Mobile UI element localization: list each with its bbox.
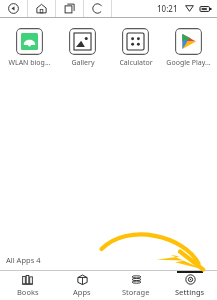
staticText: WLAN biog...: [8, 58, 51, 68]
staticText: Calculator: [119, 58, 153, 68]
staticText: Gallery: [71, 58, 95, 68]
button[interactable]: Books: [0, 271, 55, 300]
button[interactable]: WLAN biog...: [2, 25, 56, 71]
button[interactable]: Refresh: [84, 0, 111, 17]
button[interactable]: Google Play...: [162, 25, 215, 71]
button[interactable]: Apps: [55, 271, 109, 300]
staticText: Google Play...: [166, 58, 211, 68]
button[interactable]: Recents: [56, 0, 83, 17]
button[interactable]: Calculator: [109, 25, 162, 71]
staticText: Books: [17, 287, 39, 297]
button[interactable]: Storage: [109, 271, 163, 300]
button[interactable]: Home: [28, 0, 55, 17]
button[interactable]: Settings: [163, 271, 217, 300]
staticText: Apps: [73, 287, 91, 297]
button[interactable]: Gallery: [56, 25, 109, 71]
staticText: 10:21: [157, 3, 178, 14]
staticText: Storage: [122, 287, 150, 297]
button[interactable]: Back: [0, 0, 27, 17]
staticText: All Apps 4: [6, 255, 41, 265]
staticText: Settings: [175, 287, 205, 297]
